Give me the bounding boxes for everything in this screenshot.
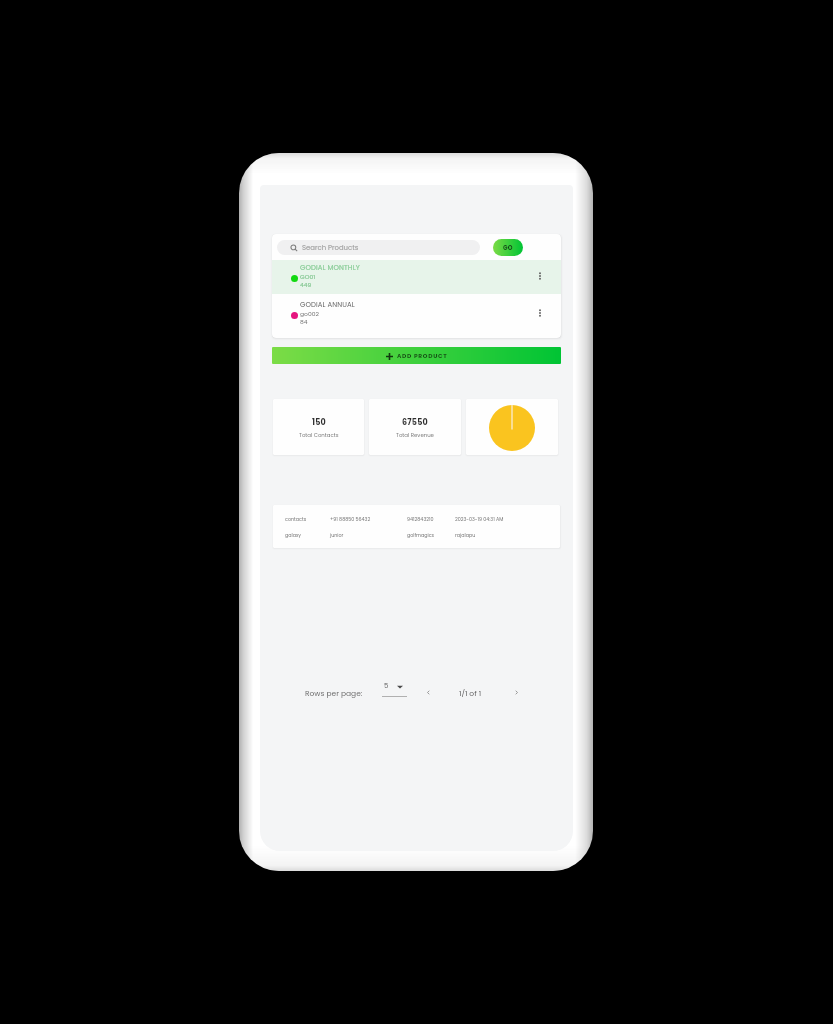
staticText: 9412843210 [407,516,434,523]
staticText: 84 [300,318,308,326]
staticText: ADD PRODUCT [397,352,448,360]
button[interactable]: More options [533,306,547,320]
button[interactable]: ADD PRODUCT [272,347,561,364]
button[interactable]: GODIAL MONTHLY [272,260,561,294]
button[interactable]: Previous page [420,684,436,700]
button[interactable]: GO [493,239,523,256]
staticText: galaxy [285,532,301,539]
staticText: +91 88850 56432 [330,516,371,523]
staticText: GO [503,244,513,252]
button[interactable]: 5 [382,681,412,703]
button[interactable]: GODIAL ANNUAL [272,294,561,328]
staticText: 67550 [402,417,428,428]
button[interactable]: 150 [273,399,364,455]
button[interactable]: More options [533,269,547,283]
staticText: rajalapu [455,532,476,539]
staticText: 449 [300,281,312,289]
staticText: 1/1 of 1 [459,688,482,698]
staticText: Search Products [302,243,359,253]
staticText: Total Revenue [396,431,434,439]
button[interactable]: Search Products [277,240,480,255]
staticText: Total Contacts [299,431,339,439]
staticText: 5 [384,681,389,691]
staticText: 2023-03-19 04:31 AM [455,516,504,523]
staticText: contacts [285,516,307,523]
staticText: golfmagics [407,532,435,539]
staticText: junior [330,532,344,539]
button[interactable]: 67550 [369,399,461,455]
button[interactable]: Next page [508,684,524,700]
staticText: GODIAL ANNUAL [300,300,355,310]
button[interactable] [466,399,558,455]
staticText: 150 [312,417,327,428]
staticText: GODIAL MONTHLY [300,263,360,273]
staticText: Rows per page: [305,688,363,698]
staticText: go002 [300,310,319,318]
staticText: GO01 [300,273,316,281]
